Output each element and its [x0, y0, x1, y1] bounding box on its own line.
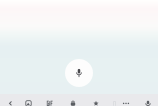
button[interactable]: Dictation	[65, 59, 93, 87]
button[interactable]: Music	[107, 97, 121, 106]
button[interactable]: Memoji	[89, 97, 103, 106]
button[interactable]: Apple Store	[66, 97, 80, 106]
button[interactable]: GIF	[43, 97, 57, 106]
button[interactable]: More	[119, 97, 133, 106]
button[interactable]: Back	[3, 97, 17, 106]
button[interactable]: Microphone	[141, 97, 155, 106]
button[interactable]: Photos	[21, 97, 35, 106]
